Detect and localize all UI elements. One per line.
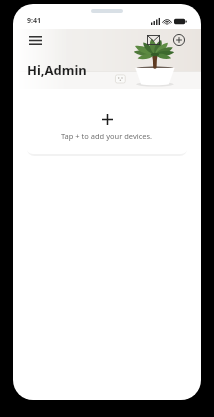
- button[interactable]: Menu: [26, 31, 44, 49]
- button[interactable]: Tap + to add your devices.: [26, 100, 188, 154]
- button[interactable]: Messages: [144, 31, 162, 49]
- button[interactable]: Add device: [170, 31, 188, 49]
- staticText: Hi,Admin: [27, 61, 87, 79]
- staticText: Tap + to add your devices.: [61, 131, 153, 141]
- staticText: 9:41: [27, 16, 41, 26]
